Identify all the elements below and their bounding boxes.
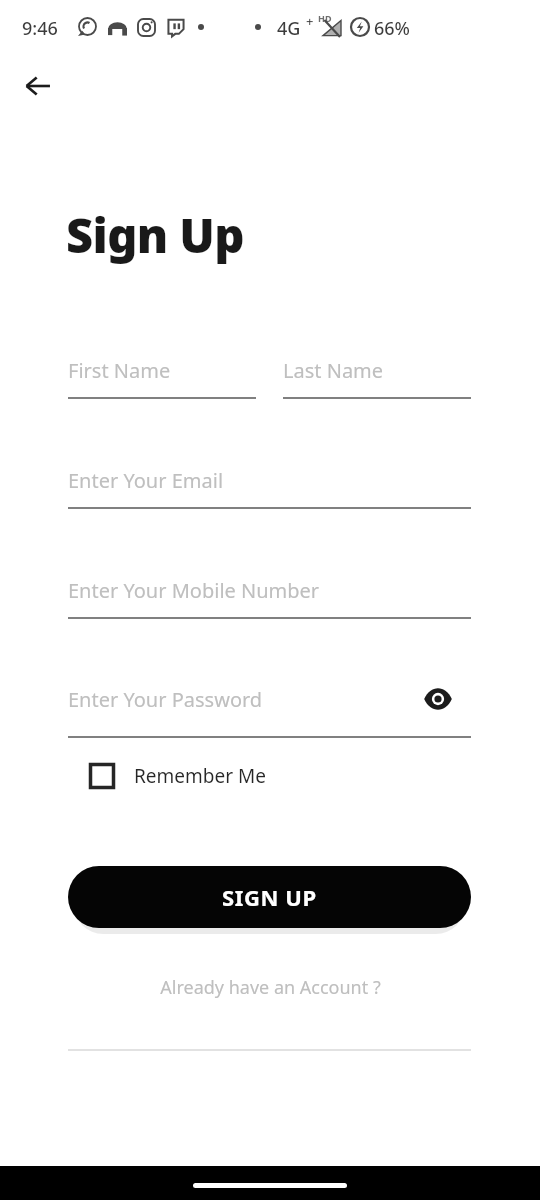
staticText: Enter Your Mobile Number <box>68 577 320 604</box>
staticText: Remember Me <box>134 763 266 789</box>
staticText: + <box>306 12 314 30</box>
staticText: Last Name <box>283 357 384 384</box>
staticText: Enter Your Password <box>68 686 263 713</box>
button[interactable] <box>68 568 471 620</box>
button[interactable] <box>283 348 471 400</box>
button[interactable]: Remember Me <box>80 754 266 798</box>
staticText: 66% <box>374 16 410 41</box>
button[interactable]: Already have an Account ? <box>0 970 540 1004</box>
button[interactable]: Show password <box>416 677 460 721</box>
button[interactable] <box>68 458 471 510</box>
staticText: First Name <box>68 357 171 384</box>
staticText: SIGN UP <box>222 882 317 912</box>
button[interactable] <box>68 348 256 400</box>
button[interactable]: SIGN UP <box>68 866 471 928</box>
staticText: 4G <box>277 16 301 41</box>
staticText: 9:46 <box>22 16 58 41</box>
staticText: HD <box>318 12 332 24</box>
button[interactable] <box>68 677 418 729</box>
button[interactable]: Back <box>16 64 60 108</box>
staticText: Already have an Account ? <box>160 975 381 1000</box>
staticText: Sign Up <box>66 203 244 267</box>
staticText: Enter Your Email <box>68 467 224 494</box>
